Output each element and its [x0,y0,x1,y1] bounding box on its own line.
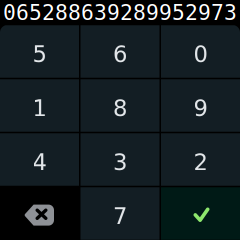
button[interactable]: 0 [161,25,240,78]
button[interactable]: 7 [80,187,159,240]
button[interactable]: 3 [80,133,159,186]
button[interactable]: 9 [161,79,240,132]
staticText: 6 [113,41,127,67]
button[interactable]: Submit [161,187,240,240]
button[interactable]: 5 [0,25,79,78]
staticText: 5 [32,41,46,67]
staticText: 8 [113,95,127,121]
staticText: 2 [193,149,207,175]
staticText: 0 [193,41,207,67]
button[interactable]: 4 [0,133,79,186]
staticText: 3 [113,149,127,175]
button[interactable]: 2 [161,133,240,186]
staticText: 4 [32,149,46,175]
staticText: 7 [113,203,127,229]
staticText: 9 [193,95,207,121]
staticText: 065288639289952973 [3,0,237,25]
button[interactable]: 6 [80,25,159,78]
button[interactable]: 8 [80,79,159,132]
button[interactable]: 1 [0,79,79,132]
button[interactable]: Delete [0,187,79,240]
staticText: 1 [32,95,46,121]
